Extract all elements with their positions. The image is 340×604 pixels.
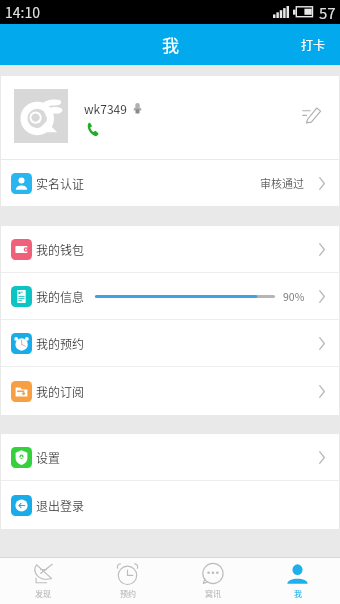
button[interactable]: 打卡 — [287, 24, 340, 65]
button[interactable]: 发现 — [0, 557, 85, 604]
staticText: 我的预约 — [36, 335, 85, 352]
staticText: 90% — [283, 289, 305, 304]
button[interactable]: wk7349 — [1, 76, 339, 159]
staticText: 审核通过 — [260, 175, 304, 191]
staticText: 窝讯 — [205, 588, 221, 600]
button[interactable]: 设置 — [1, 434, 339, 481]
staticText: 发现 — [35, 588, 51, 600]
staticText: 我 — [294, 588, 302, 600]
button[interactable]: 我的订阅 — [1, 367, 339, 415]
staticText: wk7349 — [84, 100, 127, 117]
staticText: 实名认证 — [36, 175, 85, 192]
staticText: 我的订阅 — [36, 383, 85, 400]
button[interactable]: 实名认证 — [1, 160, 339, 206]
staticText: 我的钱包 — [36, 241, 85, 258]
button[interactable]: 我的预约 — [1, 320, 339, 367]
button[interactable]: 我的钱包 — [1, 226, 339, 273]
button[interactable]: Edit profile — [298, 101, 324, 127]
button[interactable]: 退出登录 — [1, 481, 339, 529]
staticText: 打卡 — [301, 36, 326, 53]
staticText: 我 — [162, 32, 179, 57]
staticText: 退出登录 — [36, 497, 85, 514]
staticText: 设置 — [36, 449, 61, 466]
staticText: 14:10 — [5, 2, 40, 22]
button[interactable]: 我的信息 — [1, 273, 339, 320]
button[interactable]: 窝讯 — [170, 557, 255, 604]
button[interactable]: 我 — [255, 557, 340, 604]
staticText: 预约 — [120, 588, 136, 600]
staticText: 57 — [319, 2, 336, 24]
staticText: 我的信息 — [36, 288, 85, 305]
button[interactable]: 预约 — [85, 557, 170, 604]
